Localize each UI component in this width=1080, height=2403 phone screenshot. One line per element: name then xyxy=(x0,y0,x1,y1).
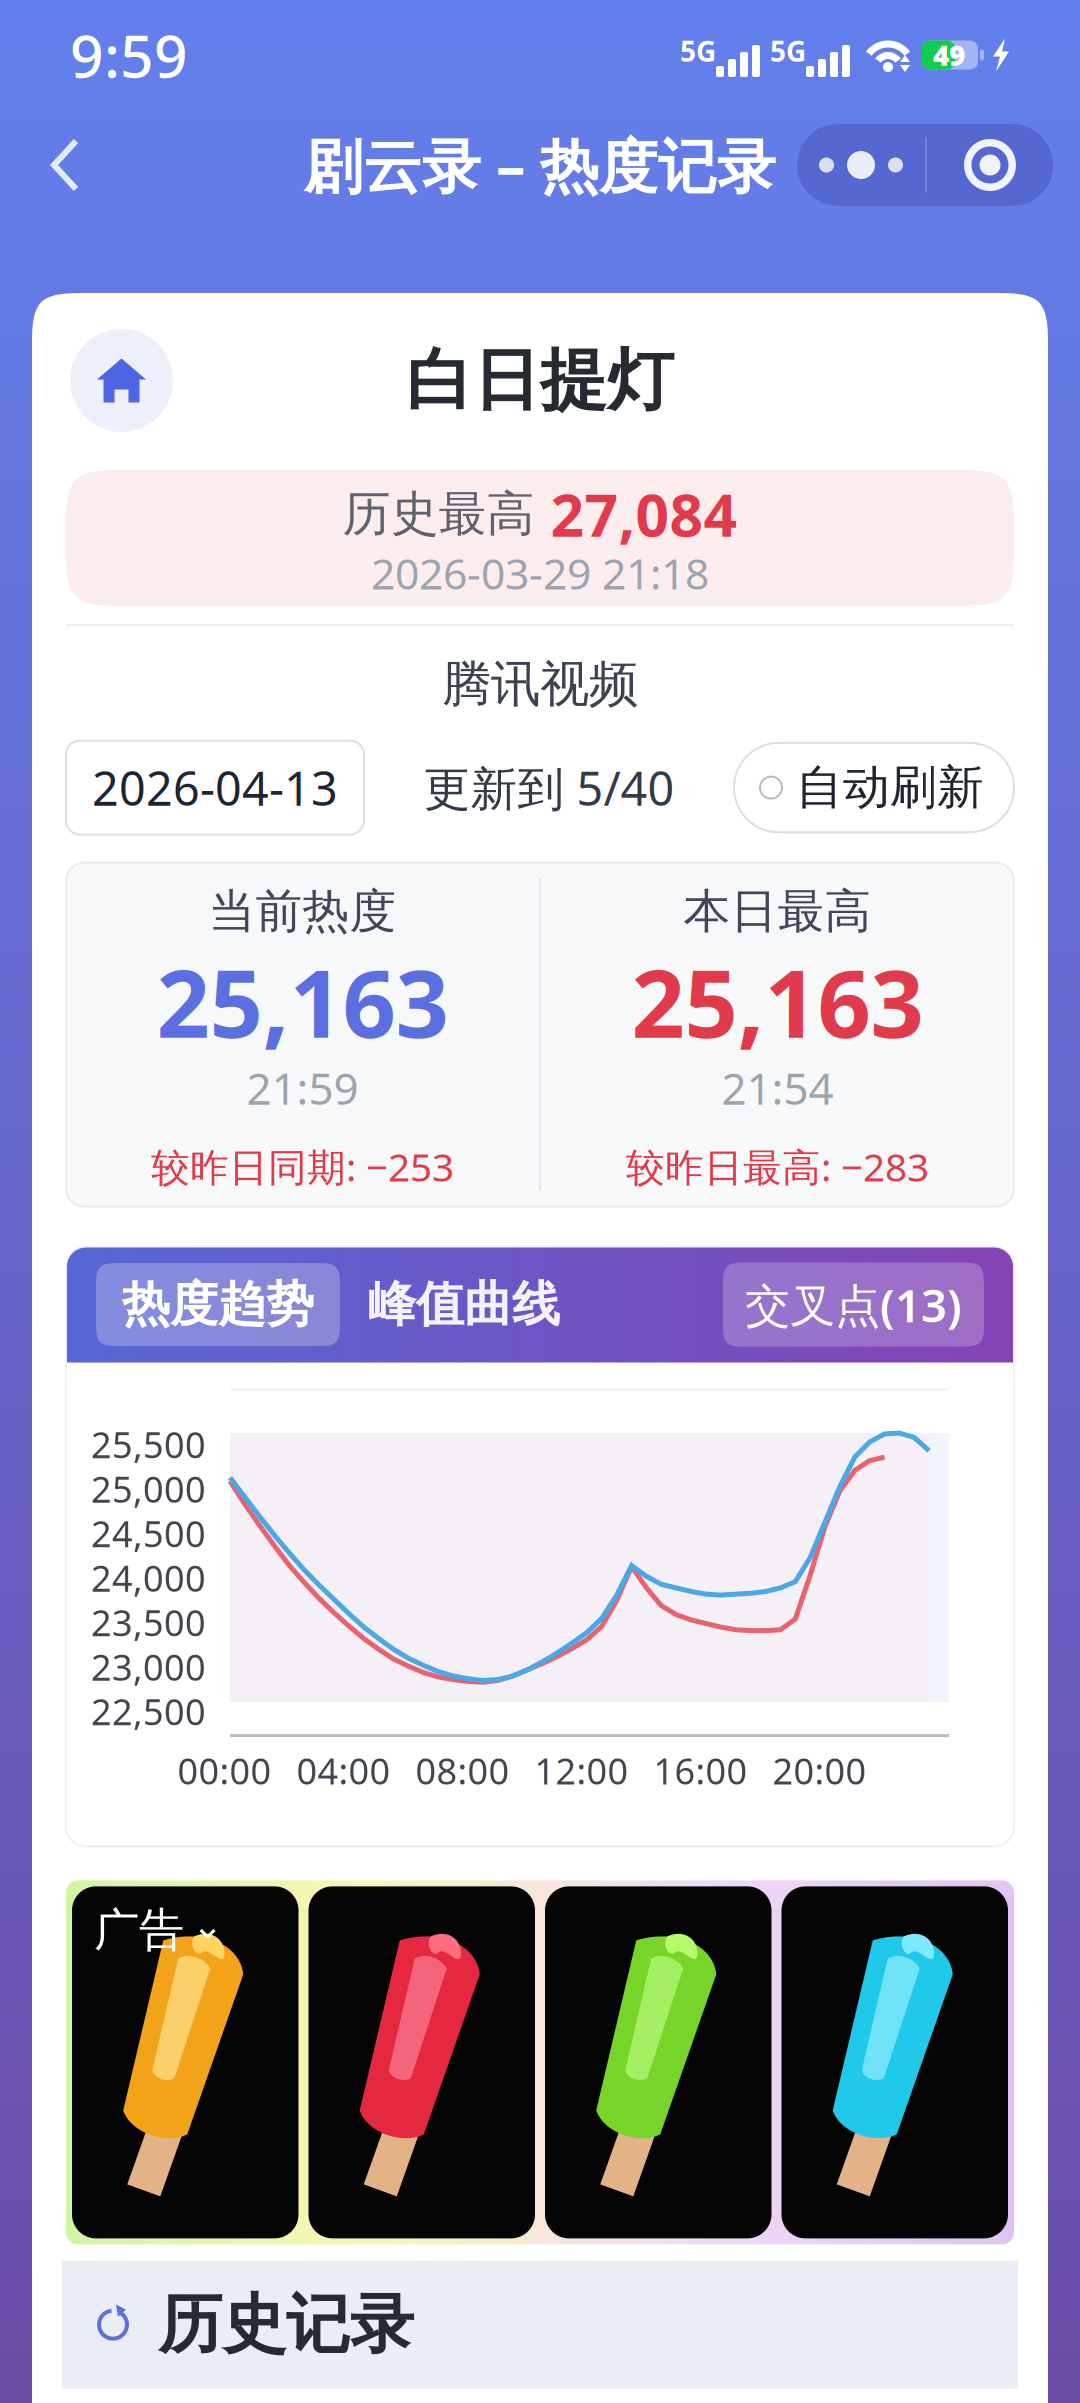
button[interactable]: 热度趋势 xyxy=(96,1263,340,1346)
staticText: 25,000 xyxy=(91,1465,206,1513)
staticText: ⌄ xyxy=(192,1904,223,1946)
staticText: 峰值曲线 xyxy=(368,1275,560,1334)
staticText: 较昨日最高: −283 xyxy=(626,1141,929,1192)
button[interactable]: 峰值曲线 xyxy=(368,1263,560,1346)
staticText: 白日提灯 xyxy=(406,340,674,421)
staticText: 21:59 xyxy=(246,1058,358,1117)
staticText: 更新到 5/40 xyxy=(423,757,674,819)
staticText: 自动刷新 xyxy=(796,759,984,816)
staticText: 12:00 xyxy=(534,1747,628,1794)
staticText: 热度趋势 xyxy=(122,1275,314,1334)
staticText: 08:00 xyxy=(415,1747,509,1794)
staticText: 历史记录 xyxy=(158,2285,414,2364)
staticText: 23,000 xyxy=(91,1643,206,1691)
button[interactable]: Back xyxy=(20,115,110,215)
staticText: 25,163 xyxy=(156,940,448,1063)
staticText: 广告 xyxy=(94,1902,184,1958)
staticText: 9:59 xyxy=(70,16,188,94)
staticText: 24,000 xyxy=(91,1554,206,1602)
staticText: 27,084 xyxy=(550,475,737,553)
staticText: 21:54 xyxy=(721,1058,833,1117)
staticText: 49 xyxy=(933,36,965,74)
staticText: 23,500 xyxy=(91,1598,206,1646)
staticText: 腾讯视频 xyxy=(442,654,638,715)
staticText: 剧云录 – 热度记录 xyxy=(304,126,776,204)
staticText: 历史最高 xyxy=(342,484,534,543)
staticText: 交叉点(13) xyxy=(745,1274,962,1335)
staticText: 2026-04-13 xyxy=(92,757,338,819)
staticText: 2026-03-29 21:18 xyxy=(371,545,709,601)
staticText: 当前热度 xyxy=(208,883,396,940)
staticText: 22,500 xyxy=(91,1687,206,1735)
button[interactable]: 2026-04-13 xyxy=(66,741,364,835)
staticText: 较昨日同期: −253 xyxy=(151,1141,454,1192)
staticText: 04:00 xyxy=(296,1747,390,1794)
button[interactable]: Advertisement xyxy=(66,1880,1014,2244)
staticText: 5G xyxy=(770,32,806,70)
staticText: 本日最高 xyxy=(683,883,871,940)
button[interactable]: 交叉点(13) xyxy=(723,1262,984,1347)
staticText: 16:00 xyxy=(653,1747,747,1794)
staticText: 5G xyxy=(680,32,716,70)
staticText: 00:00 xyxy=(177,1747,271,1794)
button[interactable]: Home xyxy=(70,329,173,432)
staticText: 25,500 xyxy=(91,1420,206,1468)
button[interactable]: More options xyxy=(797,124,1053,206)
staticText: 20:00 xyxy=(772,1747,866,1794)
button[interactable]: 自动刷新 xyxy=(734,743,1014,832)
staticText: 25,163 xyxy=(631,940,923,1063)
staticText: 24,500 xyxy=(91,1509,206,1557)
